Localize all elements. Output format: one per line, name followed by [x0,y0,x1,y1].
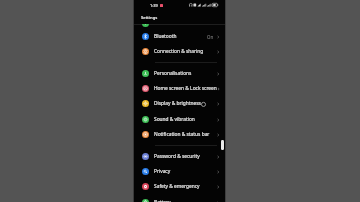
button[interactable]: Battery [134,195,225,202]
button[interactable]: Personalisations [134,66,225,81]
staticText: Safety & emergency [154,183,200,190]
button[interactable]: Display & brightness [134,96,225,111]
button[interactable]: Safety & emergency [134,179,225,194]
staticText: Battery [154,199,171,202]
button[interactable]: Password & security [134,149,225,164]
button[interactable]: Sound & vibration [134,112,225,127]
staticText: Password & security [154,153,200,160]
staticText: Settings [141,15,158,21]
staticText: 1:39 [150,3,158,8]
staticText: Home screen & Lock screen [154,85,217,92]
button[interactable]: Privacy [134,164,225,179]
staticText: Sound & vibration [154,116,195,123]
button[interactable]: Home screen & Lock screen [134,81,225,96]
staticText: Personalisations [154,70,192,77]
staticText: Bluetooth [154,33,177,40]
staticText: Privacy [154,168,171,175]
staticText: Notification & status bar [154,131,210,138]
staticText: Connection & sharing [154,48,204,55]
button[interactable]: Bluetooth [134,29,225,44]
button[interactable]: Notification & status bar [134,127,225,142]
staticText: On [207,34,214,40]
staticText: Display & brightness [154,100,201,107]
button[interactable] [134,16,225,31]
button[interactable]: Settings [141,15,158,21]
button[interactable]: Connection & sharing [134,44,225,59]
